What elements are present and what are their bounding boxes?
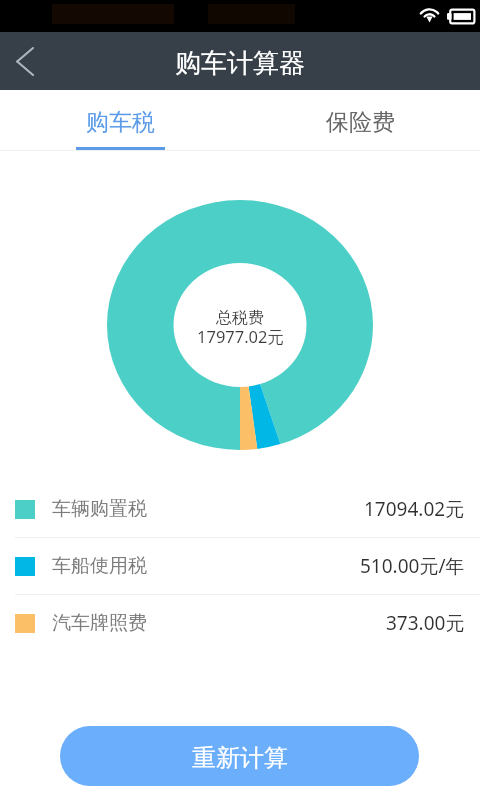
staticText: 17977.02元 xyxy=(197,325,284,348)
button[interactable]: 保险费 xyxy=(240,90,480,151)
staticText: 510.00元/年 xyxy=(360,553,465,579)
staticText: 17094.02元 xyxy=(364,496,465,522)
staticText: 总税费 xyxy=(216,308,264,328)
staticText: 重新计算 xyxy=(192,743,288,773)
staticText: 购车税 xyxy=(86,108,155,137)
staticText: 购车计算器 xyxy=(175,47,305,80)
button[interactable]: 重新计算 xyxy=(60,726,419,786)
button[interactable]: 车船使用税 xyxy=(0,538,480,594)
staticText: 373.00元 xyxy=(386,610,465,636)
staticText: 汽车牌照费 xyxy=(52,611,147,635)
staticText: 车辆购置税 xyxy=(52,497,147,521)
staticText: 车船使用税 xyxy=(52,554,147,578)
button[interactable]: 汽车牌照费 xyxy=(0,595,480,651)
button[interactable]: 购车税 xyxy=(0,90,240,151)
button[interactable]: Back xyxy=(0,32,48,90)
button[interactable]: 车辆购置税 xyxy=(0,481,480,537)
staticText: 保险费 xyxy=(326,108,395,137)
